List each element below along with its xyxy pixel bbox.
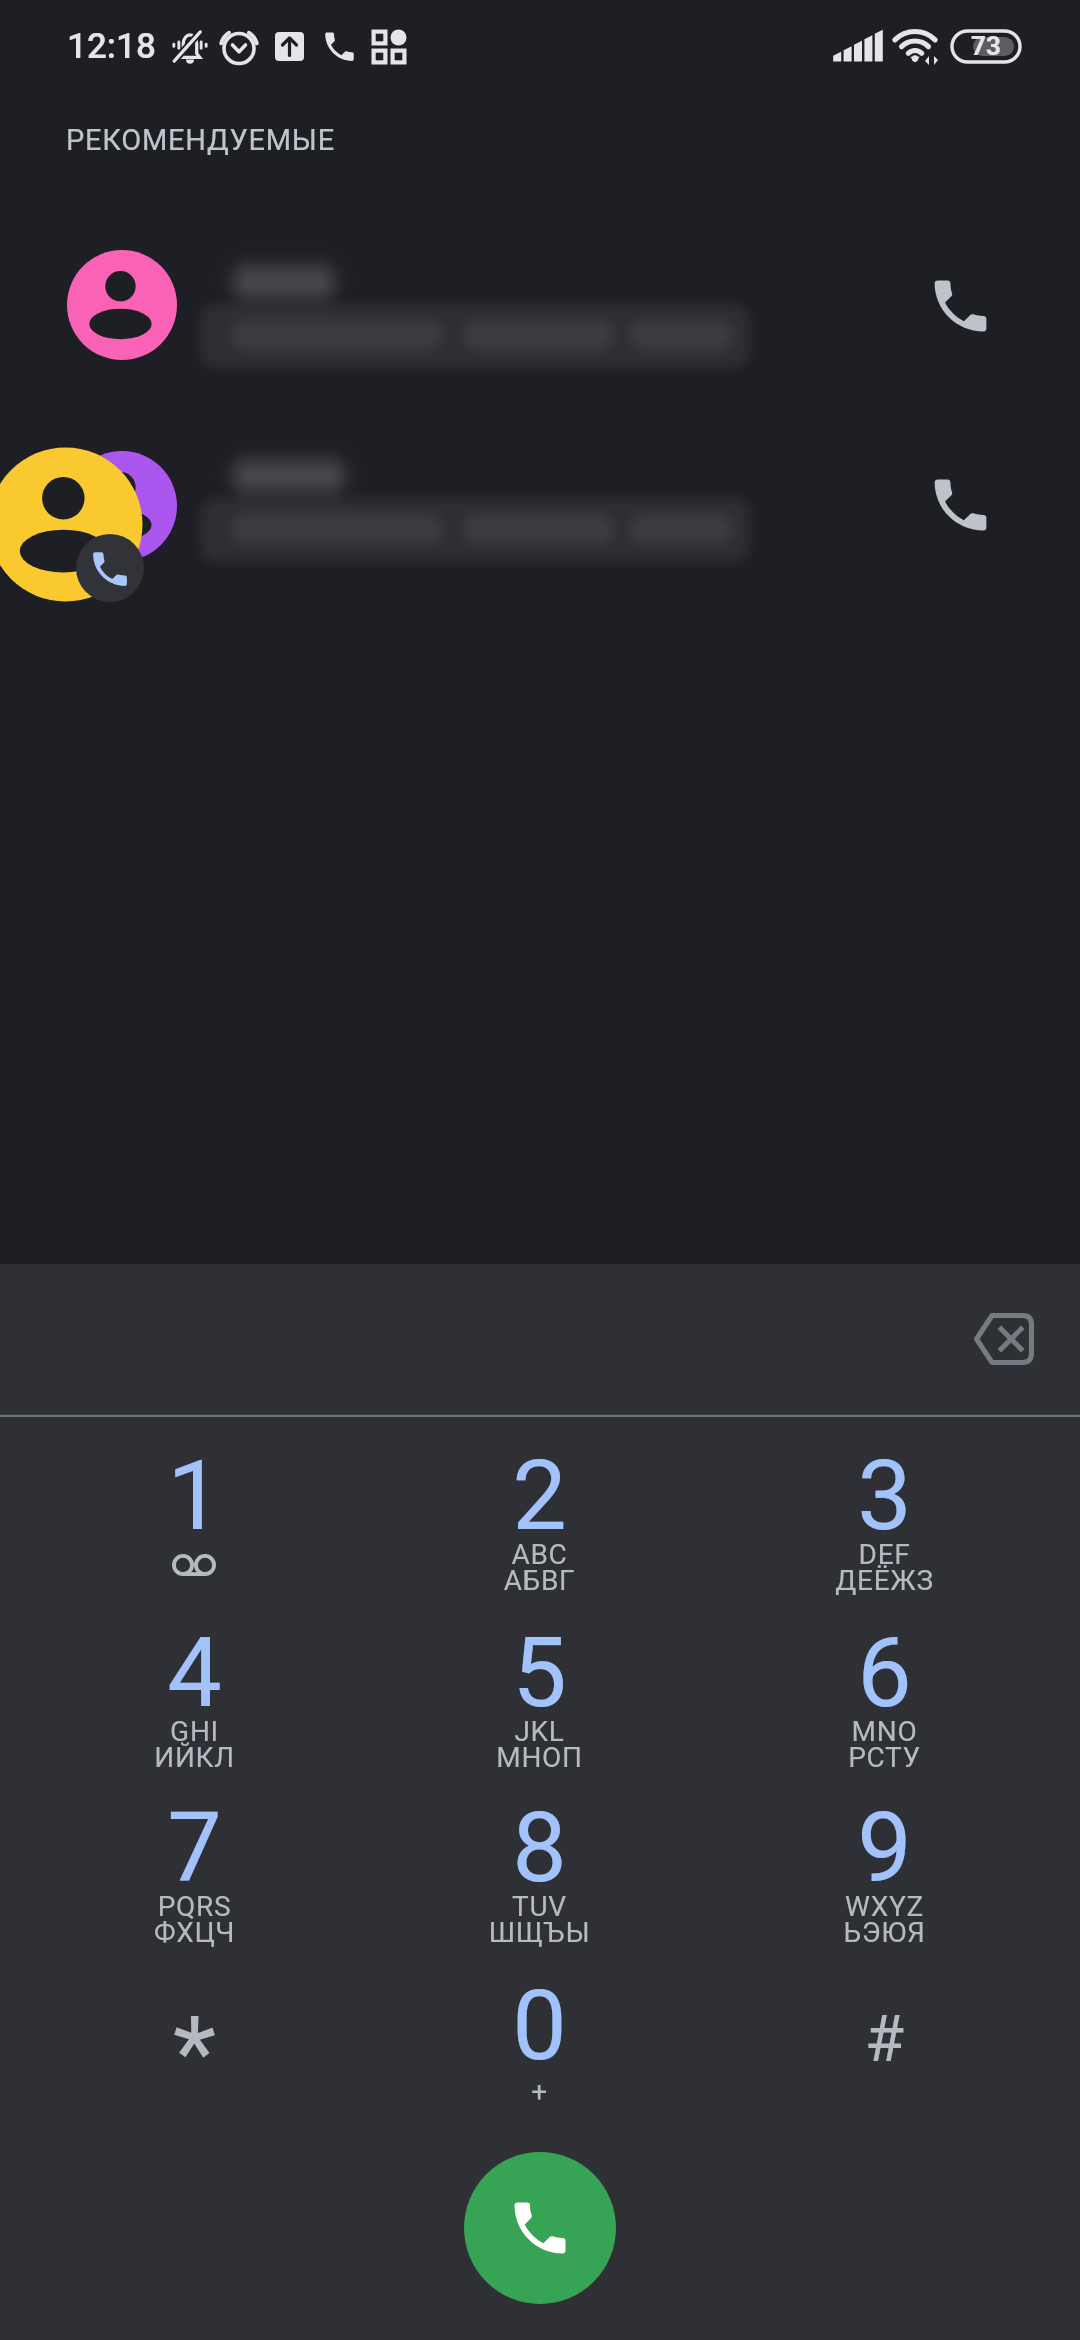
staticText: TUV <box>367 1890 712 1923</box>
staticText: АБВГ <box>367 1564 712 1597</box>
staticText: 9 <box>712 1791 1057 1905</box>
button[interactable]: 2 <box>367 1417 712 1593</box>
staticText: 73 <box>958 31 1014 61</box>
staticText: ФХЦЧ <box>22 1916 367 1949</box>
staticText: 7 <box>22 1791 367 1905</box>
staticText: # <box>712 2002 1057 2077</box>
button[interactable]: # <box>712 1947 1057 2123</box>
staticText: 0 <box>367 1969 712 2083</box>
button[interactable]: 6 <box>712 1594 1057 1770</box>
staticText: + <box>367 2075 712 2108</box>
staticText: WXYZ <box>712 1890 1057 1923</box>
staticText: 4 <box>22 1616 367 1730</box>
button[interactable]: 4 <box>22 1594 367 1770</box>
staticText: MNO <box>712 1715 1057 1748</box>
button[interactable]: Call contact <box>0 230 1080 420</box>
staticText: 12:18 <box>67 26 156 67</box>
button[interactable]: Call <box>464 2152 616 2304</box>
button[interactable]: 0 <box>367 1947 712 2123</box>
staticText: 6 <box>712 1616 1057 1730</box>
button[interactable]: Call contact <box>906 252 1014 360</box>
button[interactable]: 7 <box>22 1769 367 1945</box>
staticText: 5 <box>367 1616 712 1730</box>
staticText: 3 <box>712 1439 1057 1553</box>
staticText: ШЩЪЫ <box>367 1916 712 1949</box>
button[interactable]: 3 <box>712 1417 1057 1593</box>
staticText: 1 <box>22 1439 367 1553</box>
staticText: 8 <box>367 1791 712 1905</box>
button[interactable]: 1 <box>22 1417 367 1593</box>
button[interactable]: Call contact <box>906 451 1014 559</box>
staticText: 2 <box>367 1439 712 1553</box>
button[interactable]: Backspace <box>943 1287 1063 1391</box>
staticText: PQRS <box>22 1890 367 1923</box>
staticText: ЬЭЮЯ <box>712 1916 1057 1949</box>
button[interactable]: Call contact <box>0 420 1080 610</box>
staticText: GHI <box>22 1715 367 1748</box>
button[interactable]: 5 <box>367 1594 712 1770</box>
staticText: ИЙКЛ <box>22 1741 367 1774</box>
button[interactable]: 8 <box>367 1769 712 1945</box>
staticText: ABC <box>367 1538 712 1571</box>
button[interactable]: * <box>22 1947 367 2123</box>
button[interactable]: 9 <box>712 1769 1057 1945</box>
staticText: МНОП <box>367 1741 712 1774</box>
staticText: DEF <box>712 1538 1057 1571</box>
staticText: * <box>22 1994 367 2111</box>
staticText: РЕКОМЕНДУЕМЫЕ <box>66 123 335 157</box>
staticText: РСТУ <box>712 1741 1057 1774</box>
staticText: ДЕЁЖЗ <box>712 1564 1057 1597</box>
staticText: JKL <box>367 1715 712 1748</box>
